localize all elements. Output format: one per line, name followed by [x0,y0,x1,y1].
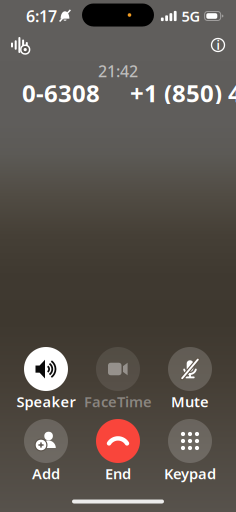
staticText: 0-6308 +1 (850) 4 [22,77,236,109]
button[interactable]: Speaker [10,347,82,409]
staticText: 21:42 [98,60,138,82]
staticText: FaceTime [84,392,152,411]
staticText: Speaker [16,392,75,411]
button[interactable]: FaceTime [82,347,154,409]
button[interactable]: End [82,419,154,481]
button[interactable]: Call details [206,33,230,57]
button[interactable]: Add [10,419,82,481]
staticText: Mute [171,392,209,411]
staticText: 6:17 [26,5,57,27]
staticText: Add [32,464,60,483]
staticText: 5G [182,6,201,26]
button[interactable]: Mute [154,347,226,409]
staticText: Keypad [164,464,216,483]
staticText: i [216,37,219,53]
button[interactable]: Live Voicemail [7,33,33,57]
button[interactable]: Keypad [154,419,226,481]
staticText: End [105,464,131,483]
